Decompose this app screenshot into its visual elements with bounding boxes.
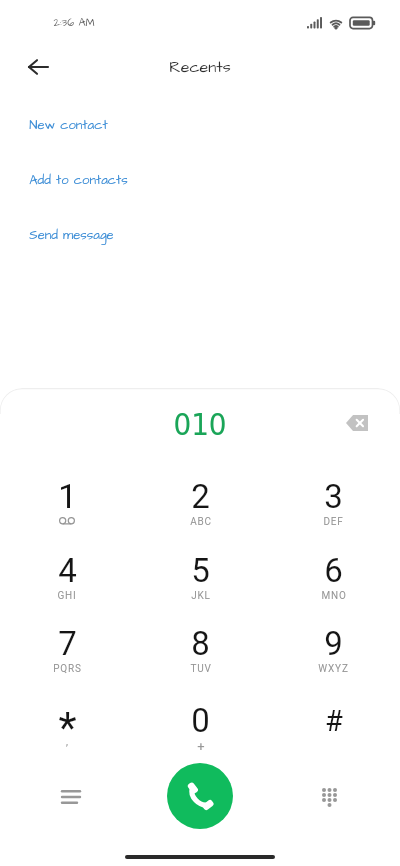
button[interactable]: 3: [267, 466, 400, 540]
staticText: JKL: [191, 590, 211, 602]
staticText: 7: [58, 624, 77, 663]
staticText: PQRS: [53, 663, 82, 675]
button[interactable]: Dialpad: [295, 763, 363, 831]
staticText: MNO: [321, 590, 347, 602]
button[interactable]: Menu: [37, 763, 105, 831]
staticText: 2: [191, 477, 210, 516]
staticText: 4: [58, 551, 77, 590]
button[interactable]: Send message: [0, 216, 400, 254]
staticText: WXYZ: [318, 663, 349, 675]
staticText: 3: [324, 477, 343, 516]
staticText: 2:36 AM: [53, 15, 95, 30]
staticText: 9: [324, 624, 343, 663]
button[interactable]: 7: [0, 613, 134, 687]
staticText: DEF: [323, 516, 344, 528]
button[interactable]: 0: [134, 690, 267, 764]
staticText: 8: [191, 624, 210, 663]
button[interactable]: 2: [134, 466, 267, 540]
staticText: ABC: [190, 516, 212, 528]
button[interactable]: Call: [167, 763, 233, 829]
button[interactable]: *: [0, 690, 134, 764]
staticText: New contact: [29, 116, 108, 134]
button[interactable]: #: [267, 690, 400, 764]
staticText: #: [325, 704, 343, 738]
staticText: GHI: [57, 590, 77, 602]
button[interactable]: 5: [134, 540, 267, 614]
button[interactable]: Back: [14, 43, 62, 91]
button[interactable]: New contact: [0, 106, 400, 144]
staticText: 010: [173, 406, 227, 442]
staticText: TUV: [190, 663, 212, 675]
button[interactable]: Add to contacts: [0, 161, 400, 199]
staticText: 0: [191, 701, 210, 740]
button[interactable]: Backspace: [337, 403, 377, 443]
staticText: Recents: [169, 56, 231, 78]
staticText: 5: [191, 551, 210, 590]
staticText: +: [197, 739, 205, 754]
staticText: Add to contacts: [29, 171, 128, 189]
staticText: *: [58, 703, 77, 752]
button[interactable]: 8: [134, 613, 267, 687]
button[interactable]: 4: [0, 540, 134, 614]
button[interactable]: 1: [0, 466, 134, 540]
button[interactable]: 6: [267, 540, 400, 614]
staticText: 6: [324, 551, 343, 590]
staticText: ,: [66, 736, 68, 748]
staticText: 1: [58, 477, 77, 516]
staticText: Send message: [29, 226, 114, 244]
button[interactable]: 9: [267, 613, 400, 687]
